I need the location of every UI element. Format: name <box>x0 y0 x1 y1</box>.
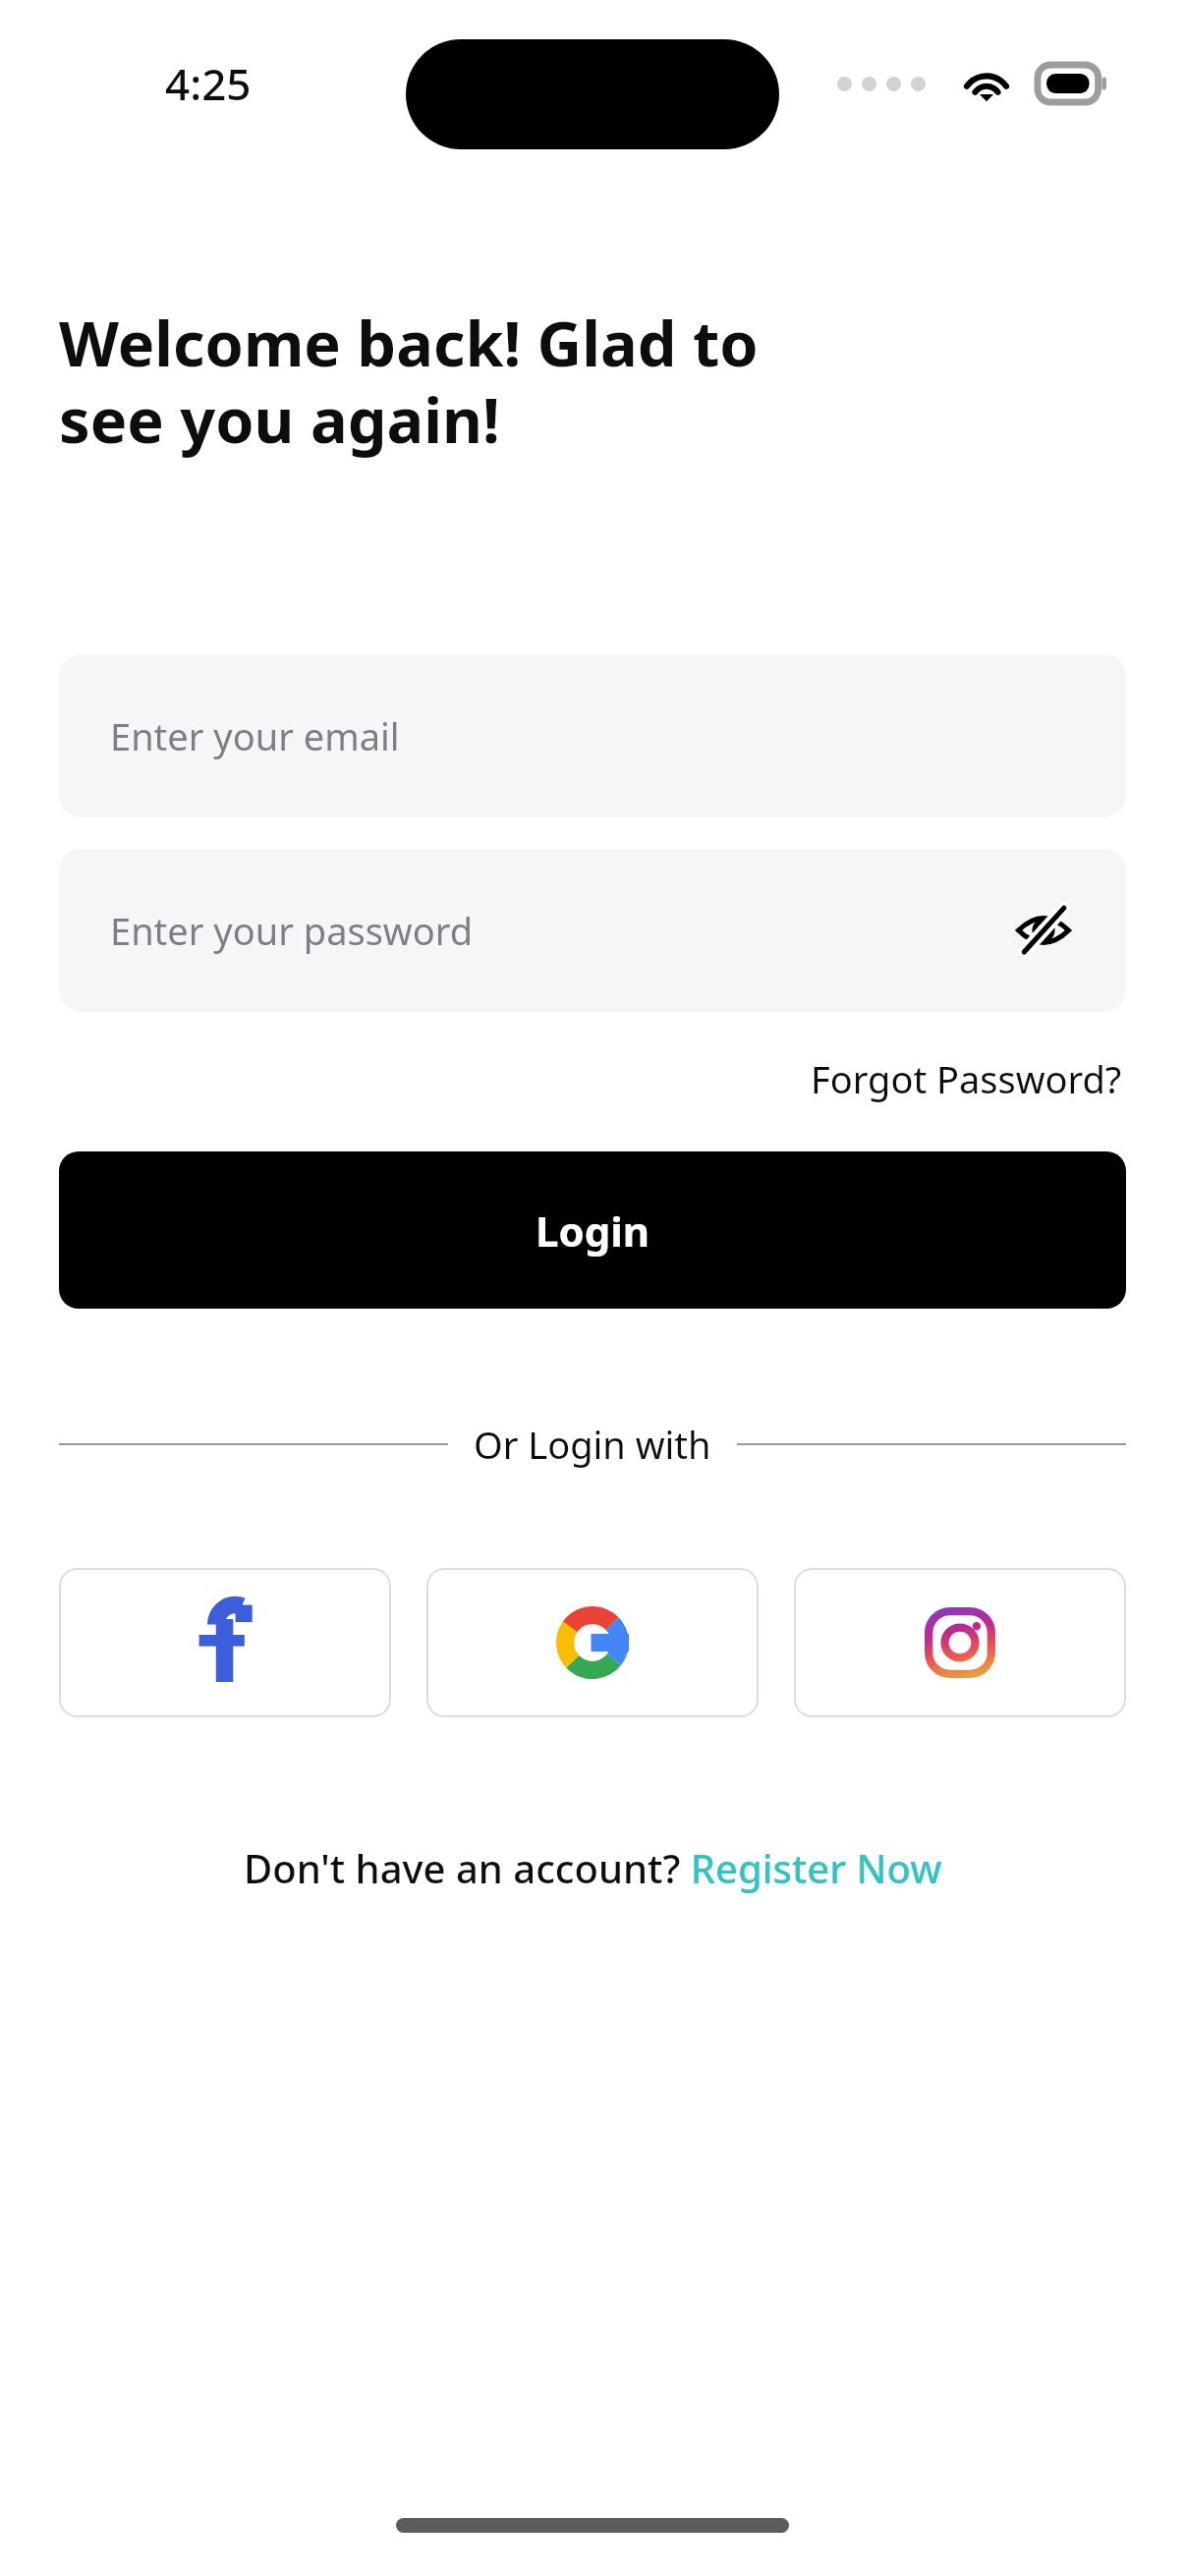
button[interactable]: Show password <box>1006 893 1081 968</box>
staticText: Or Login with <box>474 1419 711 1470</box>
staticText: Don't have an account? Register Now <box>244 1841 942 1894</box>
button[interactable]: Forgot Password? <box>807 1047 1126 1110</box>
staticText: Login <box>536 1203 650 1259</box>
staticText: Enter your email <box>110 710 1081 761</box>
staticText: 4:25 <box>165 54 252 113</box>
staticText: Forgot Password? <box>811 1053 1122 1104</box>
button[interactable]: Sign in with Google <box>426 1568 759 1717</box>
staticText: Enter your password <box>110 905 1006 956</box>
button[interactable]: Enter your email <box>59 654 1126 817</box>
button[interactable]: Sign in with Facebook <box>59 1568 391 1717</box>
button[interactable]: Sign in with Instagram <box>794 1568 1126 1717</box>
button[interactable]: Don't have an account? Register Now <box>234 1833 952 1902</box>
button[interactable]: Enter your password <box>59 849 1126 1012</box>
staticText: Welcome back! Glad to see you again! <box>59 301 1126 462</box>
button[interactable]: Login <box>59 1151 1126 1309</box>
